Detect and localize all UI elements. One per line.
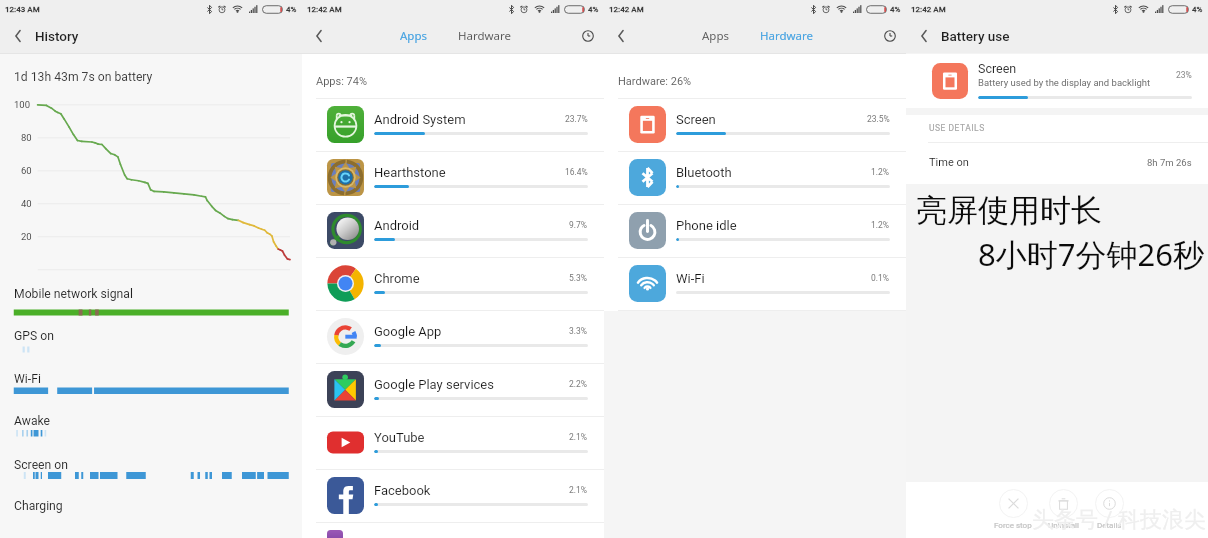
staticText: Android System bbox=[374, 112, 466, 127]
staticText: Bluetooth bbox=[676, 165, 732, 180]
staticText: 9.7% bbox=[569, 220, 588, 230]
button[interactable]: Screen bbox=[604, 98, 906, 151]
staticText: Hardware bbox=[458, 28, 512, 44]
staticText: Hardware: 26% bbox=[618, 75, 692, 88]
staticText: 23.5% bbox=[867, 114, 890, 124]
staticText: 4% bbox=[286, 5, 297, 14]
staticText: Phone idle bbox=[676, 218, 737, 233]
staticText: 12:42 AM bbox=[609, 5, 644, 14]
staticText: 2.1% bbox=[569, 485, 588, 495]
button[interactable]: Google Play services bbox=[302, 363, 604, 416]
button[interactable]: Android System bbox=[302, 98, 604, 151]
staticText: 0.1% bbox=[871, 273, 890, 283]
staticText: 80 bbox=[21, 132, 32, 143]
staticText: 23.7% bbox=[565, 114, 588, 124]
button[interactable]: Android bbox=[302, 204, 604, 257]
button[interactable]: Hearthstone bbox=[302, 151, 604, 204]
button[interactable]: YouTube bbox=[302, 416, 604, 469]
staticText: Hardware bbox=[760, 28, 814, 44]
staticText: 4% bbox=[890, 5, 901, 14]
button[interactable]: Details bbox=[1095, 489, 1124, 530]
staticText: 4% bbox=[1192, 5, 1203, 14]
staticText: 16.4% bbox=[565, 167, 588, 177]
staticText: Battery used by the display and backligh… bbox=[978, 77, 1151, 88]
staticText: Android bbox=[374, 218, 420, 233]
staticText: Screen bbox=[978, 61, 1017, 76]
staticText: Awake bbox=[14, 414, 51, 428]
staticText: 1d 13h 43m 7s on battery bbox=[14, 70, 153, 84]
staticText: 20 bbox=[21, 231, 32, 242]
staticText: 23% bbox=[1176, 70, 1192, 80]
staticText: Wi-Fi bbox=[14, 372, 41, 386]
button[interactable]: Chrome bbox=[302, 257, 604, 310]
button[interactable]: Hardware bbox=[750, 21, 824, 51]
staticText: 3.3% bbox=[569, 326, 588, 336]
staticText: 亮屏使用时长 bbox=[916, 191, 1102, 230]
staticText: Wi-Fi bbox=[676, 271, 705, 286]
staticText: Force stop bbox=[994, 521, 1032, 530]
staticText: GPS on bbox=[14, 329, 54, 343]
button[interactable]: Back bbox=[909, 21, 939, 51]
staticText: Battery use bbox=[941, 28, 1010, 44]
staticText: 40 bbox=[21, 198, 32, 209]
staticText: 12:43 AM bbox=[5, 5, 40, 14]
button[interactable]: Apps bbox=[692, 21, 740, 51]
button[interactable]: Apps bbox=[390, 21, 438, 51]
staticText: 12:42 AM bbox=[307, 5, 342, 14]
staticText: Charging bbox=[14, 499, 63, 513]
staticText: Chrome bbox=[374, 271, 420, 286]
button[interactable]: Viber bbox=[302, 522, 604, 538]
button[interactable]: Bluetooth bbox=[604, 151, 906, 204]
button[interactable]: Wi-Fi bbox=[604, 257, 906, 310]
staticText: Hearthstone bbox=[374, 165, 446, 180]
staticText: 100 bbox=[14, 99, 31, 110]
staticText: Screen bbox=[676, 112, 716, 127]
staticText: Apps: 74% bbox=[316, 75, 368, 88]
button[interactable]: History bbox=[576, 24, 600, 48]
staticText: Apps bbox=[702, 28, 730, 44]
staticText: History bbox=[35, 28, 79, 44]
staticText: 8小时7分钟26秒 bbox=[978, 233, 1204, 275]
button[interactable]: Force stop bbox=[994, 489, 1032, 530]
staticText: Time on bbox=[929, 156, 969, 169]
staticText: 1.2% bbox=[871, 220, 890, 230]
staticText: 8h 7m 26s bbox=[1147, 157, 1192, 168]
staticText: Details bbox=[1097, 521, 1122, 530]
staticText: 12:42 AM bbox=[911, 5, 946, 14]
button[interactable]: Back bbox=[606, 21, 636, 51]
button[interactable]: History bbox=[878, 24, 902, 48]
staticText: Uninstall bbox=[1048, 521, 1079, 530]
staticText: Facebook bbox=[374, 483, 431, 498]
staticText: YouTube bbox=[374, 430, 425, 445]
staticText: 2.1% bbox=[569, 432, 588, 442]
button[interactable]: Facebook bbox=[302, 469, 604, 522]
staticText: Google Play services bbox=[374, 377, 494, 392]
staticText: 4% bbox=[588, 5, 599, 14]
button[interactable]: Uninstall bbox=[1048, 489, 1079, 530]
staticText: 60 bbox=[21, 165, 32, 176]
staticText: Google App bbox=[374, 324, 442, 339]
staticText: 1.2% bbox=[871, 167, 890, 177]
staticText: 头条号 / 科技浪尖 bbox=[1032, 506, 1206, 534]
staticText: 5.3% bbox=[569, 273, 588, 283]
button[interactable]: Back bbox=[3, 21, 33, 51]
staticText: USE DETAILS bbox=[929, 123, 985, 133]
button[interactable]: Hardware bbox=[448, 21, 522, 51]
button[interactable]: Google App bbox=[302, 310, 604, 363]
button[interactable]: Phone idle bbox=[604, 204, 906, 257]
button[interactable]: Back bbox=[304, 21, 334, 51]
staticText: Apps bbox=[400, 28, 428, 44]
staticText: Mobile network signal bbox=[14, 287, 133, 301]
staticText: Screen on bbox=[14, 458, 68, 472]
staticText: 2.2% bbox=[569, 379, 588, 389]
